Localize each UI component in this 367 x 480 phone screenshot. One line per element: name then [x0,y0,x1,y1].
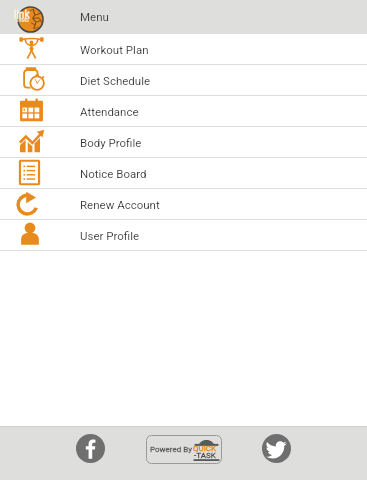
staticText: Renew Account [80,198,160,211]
staticText: Powered By [150,445,192,454]
button[interactable]: Facebook [76,434,105,463]
staticText: link [14,9,30,21]
button[interactable]: Attendance [0,96,367,126]
button[interactable]: Powered By QuickTask [146,435,222,464]
button[interactable]: Body Profile [0,127,367,157]
staticText: Attendance [80,105,139,118]
button[interactable]: Renew Account [0,189,367,219]
button[interactable]: Twitter [262,434,291,463]
staticText: Menu [80,10,109,23]
staticText: Workout Plan [80,43,149,56]
staticText: QUICK [193,444,217,453]
staticText: -TASK [194,451,216,460]
staticText: Diet Schedule [80,74,151,87]
staticText: User Profile [80,229,140,242]
button[interactable]: User Profile [0,220,367,250]
button[interactable]: Workout Plan [0,34,367,64]
button[interactable]: Diet Schedule [0,65,367,95]
staticText: Notice Board [80,167,147,180]
button[interactable]: link [0,0,367,33]
staticText: Body Profile [80,136,142,149]
button[interactable]: Notice Board [0,158,367,188]
staticText: GYMS [15,17,29,23]
